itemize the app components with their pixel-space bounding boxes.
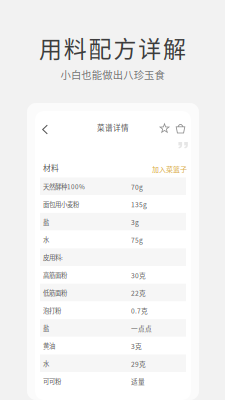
staticText: 水 xyxy=(43,235,49,244)
staticText: 加入菜篮子 xyxy=(152,164,187,174)
staticText: 30克 xyxy=(131,270,146,280)
staticText: 一点点 xyxy=(131,323,152,333)
button[interactable]: 加入菜篮子 xyxy=(150,162,189,176)
staticText: 皮用料: xyxy=(43,253,63,262)
staticText: 面包用小麦粉 xyxy=(43,200,79,209)
staticText: 3g xyxy=(131,217,139,227)
staticText: 菜谱详情 xyxy=(97,122,129,133)
staticText: 小白也能做出八珍玉食 xyxy=(60,67,165,82)
staticText: 70g xyxy=(131,182,143,192)
staticText: 高筋面粉 xyxy=(43,270,67,280)
staticText: 盐 xyxy=(43,323,49,333)
staticText: 75g xyxy=(131,235,143,245)
staticText: 可可粉 xyxy=(43,377,61,386)
staticText: 29克 xyxy=(131,359,146,369)
staticText: 适量 xyxy=(131,377,145,386)
staticText: 黄油 xyxy=(43,341,55,350)
staticText: 低筋面粉 xyxy=(43,288,67,297)
button[interactable]: Favorite xyxy=(157,121,172,136)
staticText: 用料配方详解 xyxy=(39,31,186,64)
staticText: 盐 xyxy=(43,217,49,226)
staticText: 135g xyxy=(131,200,147,209)
staticText: 泡打粉 xyxy=(43,306,61,315)
staticText: 0.7克 xyxy=(131,306,148,315)
staticText: 水 xyxy=(43,359,49,368)
button[interactable]: Shopping basket xyxy=(173,121,188,136)
button[interactable]: Back xyxy=(38,122,52,137)
staticText: 22克 xyxy=(131,288,146,298)
staticText: 3克 xyxy=(131,341,142,351)
staticText: 天然酵种100% xyxy=(43,182,85,191)
staticText: 材料 xyxy=(43,162,59,173)
